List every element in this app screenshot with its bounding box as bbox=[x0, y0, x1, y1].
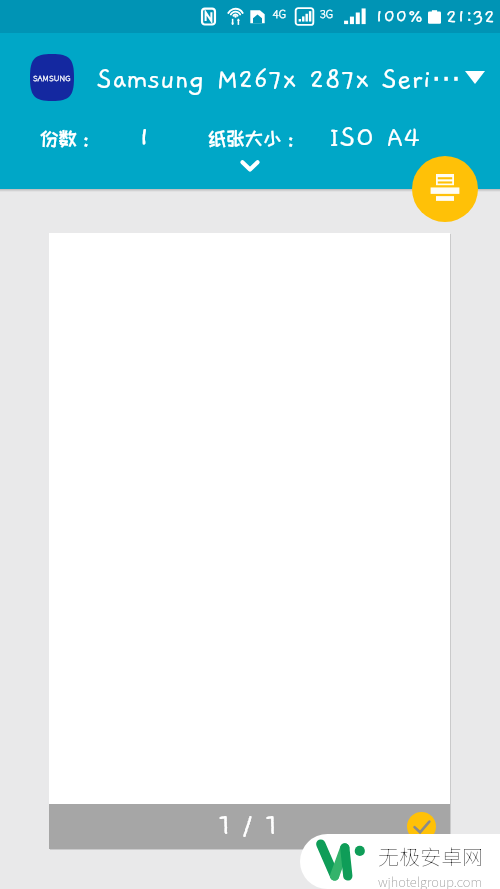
staticText: 无极安卓网 bbox=[378, 841, 483, 871]
staticText: 1 bbox=[138, 122, 151, 153]
button[interactable]: Page selected bbox=[407, 812, 436, 841]
button[interactable]: SAMSUNG bbox=[30, 33, 485, 122]
button[interactable]: Show more options bbox=[228, 148, 272, 182]
staticText: ISO A4 bbox=[329, 122, 421, 153]
staticText: wjhotelgroup.com bbox=[378, 872, 483, 889]
staticText: 1 / 1 bbox=[219, 810, 280, 842]
staticText: SAMSUNG bbox=[33, 72, 71, 84]
staticText: 21:32 bbox=[446, 6, 495, 27]
button[interactable]: 纸张大小： bbox=[208, 122, 421, 153]
staticText: 3G bbox=[320, 5, 334, 21]
staticText: 纸张大小： bbox=[208, 128, 300, 148]
button[interactable]: Print bbox=[412, 156, 478, 222]
staticText: 100% bbox=[375, 6, 424, 27]
button[interactable]: 份数： bbox=[40, 122, 151, 153]
staticText: 4G bbox=[273, 5, 287, 21]
staticText: 份数： bbox=[40, 128, 96, 148]
staticText: Samsung M267x 287x Seri⋯ bbox=[97, 60, 465, 95]
